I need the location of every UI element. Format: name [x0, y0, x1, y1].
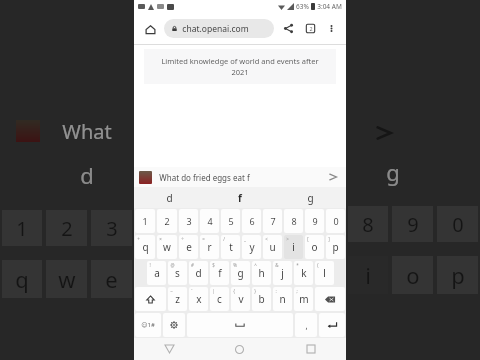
- staticText: [: [307, 236, 309, 242]
- button[interactable]: [319, 313, 345, 337]
- button[interactable]: Recents: [275, 338, 346, 360]
- button[interactable]: d: [189, 261, 208, 285]
- button[interactable]: More options: [323, 20, 340, 37]
- staticText: 2: [309, 25, 313, 32]
- button[interactable]: [187, 313, 293, 337]
- button[interactable]: p: [326, 235, 345, 259]
- button[interactable]: m: [294, 287, 313, 311]
- staticText: ÷: [181, 236, 184, 242]
- staticText: 3: [186, 215, 192, 227]
- button[interactable]: ,: [295, 313, 317, 337]
- staticText: d: [166, 191, 173, 205]
- staticText: ☺1#: [141, 321, 155, 329]
- button[interactable]: Back: [134, 338, 204, 360]
- button[interactable]: f: [204, 187, 275, 208]
- button[interactable]: 0: [326, 209, 345, 233]
- staticText: b: [258, 292, 265, 306]
- button[interactable]: r: [200, 235, 219, 259]
- button[interactable]: d: [134, 187, 204, 208]
- button[interactable]: f: [210, 261, 229, 285]
- staticText: 2: [61, 215, 73, 242]
- staticText: ,: [305, 320, 308, 331]
- staticText: $: [212, 262, 215, 268]
- button[interactable]: y: [242, 235, 261, 259]
- button[interactable]: 2: [157, 209, 177, 233]
- button[interactable]: i: [284, 235, 303, 259]
- button[interactable]: q: [135, 235, 155, 259]
- button[interactable]: z: [168, 287, 187, 311]
- staticText: *: [296, 262, 299, 268]
- staticText: d: [195, 266, 202, 280]
- button[interactable]: u: [263, 235, 282, 259]
- button[interactable]: b: [252, 287, 271, 311]
- button[interactable]: [315, 287, 345, 311]
- button[interactable]: 6: [242, 209, 261, 233]
- button[interactable]: a: [147, 261, 166, 285]
- button[interactable]: 5: [221, 209, 240, 233]
- button[interactable]: n: [273, 287, 292, 311]
- button[interactable]: j: [273, 261, 292, 285]
- staticText: s: [175, 266, 180, 280]
- staticText: ~: [170, 288, 173, 294]
- staticText: e: [186, 240, 192, 254]
- button[interactable]: g: [231, 261, 250, 285]
- staticText: o: [311, 240, 318, 254]
- staticText: 7: [270, 215, 276, 227]
- button[interactable]: l: [315, 261, 334, 285]
- staticText: c: [217, 292, 222, 306]
- button[interactable]: g: [275, 187, 346, 208]
- button[interactable]: Tabs: [301, 19, 320, 38]
- staticText: q: [142, 240, 149, 254]
- button[interactable]: 9: [305, 209, 324, 233]
- staticText: 9: [407, 211, 419, 238]
- staticText: {: [233, 288, 235, 294]
- button[interactable]: t: [221, 235, 240, 259]
- staticText: !: [149, 262, 151, 268]
- button[interactable]: s: [168, 261, 187, 285]
- staticText: f: [238, 191, 242, 205]
- button[interactable]: Avatar: [139, 171, 152, 184]
- button[interactable]: [135, 287, 166, 311]
- staticText: %: [233, 262, 237, 268]
- button[interactable]: ☺1#: [135, 313, 161, 337]
- button[interactable]: chat.openai.com: [164, 19, 274, 38]
- staticText: chat.openai.com: [182, 23, 249, 35]
- staticText: d: [80, 160, 94, 190]
- button[interactable]: x: [189, 287, 208, 311]
- staticText: g: [307, 191, 314, 205]
- staticText: 0: [333, 215, 339, 227]
- staticText: 2: [164, 215, 170, 227]
- staticText: x: [196, 292, 202, 306]
- staticText: u: [269, 240, 276, 254]
- staticText: @: [170, 262, 175, 268]
- button[interactable]: Send: [325, 169, 341, 185]
- staticText: 9: [312, 215, 318, 227]
- button[interactable]: [163, 313, 185, 337]
- button[interactable]: e: [179, 235, 198, 259]
- staticText: What: [62, 118, 112, 145]
- button[interactable]: v: [231, 287, 250, 311]
- button[interactable]: 4: [200, 209, 219, 233]
- staticText: 8: [362, 211, 374, 238]
- button[interactable]: c: [210, 287, 229, 311]
- button[interactable]: h: [252, 261, 271, 285]
- button[interactable]: k: [294, 261, 313, 285]
- button[interactable]: Home: [204, 338, 275, 360]
- button[interactable]: 8: [284, 209, 303, 233]
- staticText: w: [163, 240, 171, 254]
- button[interactable]: w: [157, 235, 177, 259]
- staticText: _: [244, 236, 246, 242]
- button[interactable]: 1: [135, 209, 155, 233]
- button[interactable]: Home: [140, 19, 160, 39]
- staticText: 3: [106, 215, 118, 242]
- button[interactable]: o: [305, 235, 324, 259]
- staticText: w: [58, 264, 76, 294]
- button[interactable]: 7: [263, 209, 282, 233]
- staticText: p: [451, 260, 465, 290]
- staticText: 4: [207, 215, 213, 227]
- staticText: 0: [452, 211, 464, 238]
- button[interactable]: 3: [179, 209, 198, 233]
- staticText: g: [386, 157, 400, 187]
- staticText: h: [258, 266, 265, 280]
- button[interactable]: Share: [279, 19, 298, 38]
